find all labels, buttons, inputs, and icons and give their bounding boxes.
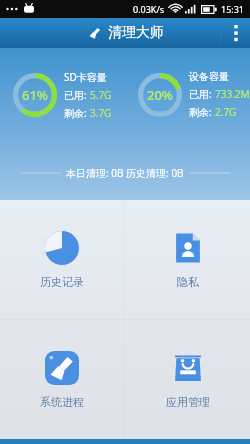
staticText: 应用管理 (166, 395, 210, 409)
button[interactable]: System processes (0, 320, 124, 439)
button[interactable]: History (0, 200, 124, 319)
staticText: 系统进程 (40, 395, 84, 409)
staticText: 剩余: (64, 106, 90, 120)
button[interactable]: Privacy (125, 200, 250, 319)
staticText: 3.7G (90, 106, 112, 120)
staticText: 历史记录 (40, 275, 84, 289)
button[interactable]: More options (220, 18, 250, 48)
staticText: 20% (147, 86, 173, 104)
staticText: 5.7G (90, 88, 112, 102)
staticText: 隐私 (177, 275, 199, 289)
staticText: 61% (22, 86, 48, 104)
staticText: 本日清理: 0B 历史清理: 0B (66, 166, 184, 180)
staticText: 2.7G (215, 105, 237, 119)
staticText: 清理大师 (108, 24, 164, 42)
staticText: 剩余: (189, 105, 215, 119)
staticText: 已用: (189, 87, 215, 101)
button[interactable]: App manager (125, 320, 250, 439)
staticText: 设备容量 (189, 70, 229, 83)
staticText: SD卡容量 (64, 70, 107, 84)
staticText: 733.2M (215, 87, 250, 101)
staticText: 已用: (64, 88, 90, 102)
staticText: 0.03K/s (133, 3, 165, 15)
staticText: 15:31 (221, 3, 245, 15)
